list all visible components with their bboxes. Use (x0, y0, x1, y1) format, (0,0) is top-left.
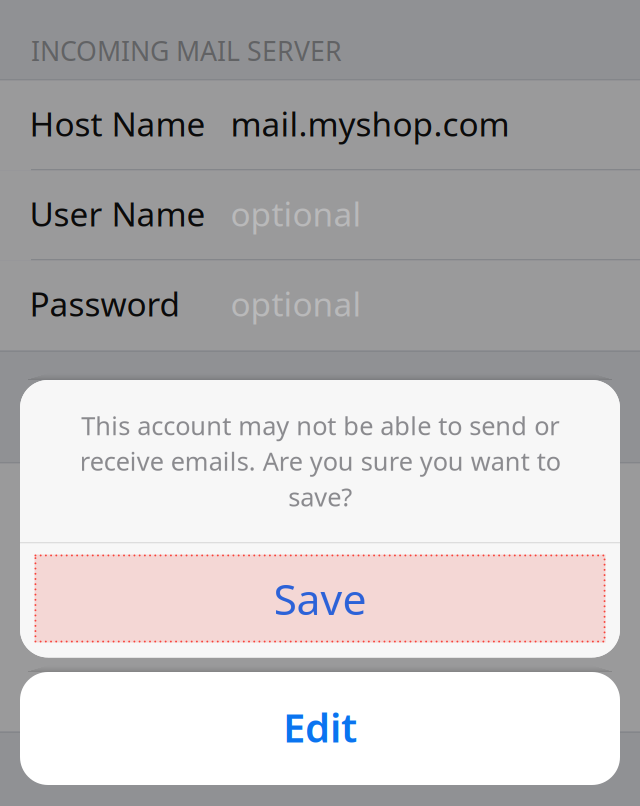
button[interactable]: Save (20, 543, 620, 657)
button[interactable]: Host Name (0, 80, 640, 170)
button[interactable]: User Name (0, 170, 640, 260)
button[interactable]: Edit (20, 672, 620, 785)
staticText: Edit (283, 700, 357, 753)
staticText: Password (29, 281, 180, 326)
staticText: optional (230, 191, 361, 236)
staticText: User Name (29, 191, 205, 236)
button[interactable]: Password (0, 260, 640, 350)
staticText: mail.myshop.com (230, 101, 509, 146)
staticText: This account may not be able to send or … (79, 408, 560, 513)
staticText: INCOMING MAIL SERVER (31, 33, 342, 68)
staticText: optional (230, 281, 361, 326)
staticText: Host Name (29, 101, 205, 146)
staticText: Save (273, 570, 366, 627)
